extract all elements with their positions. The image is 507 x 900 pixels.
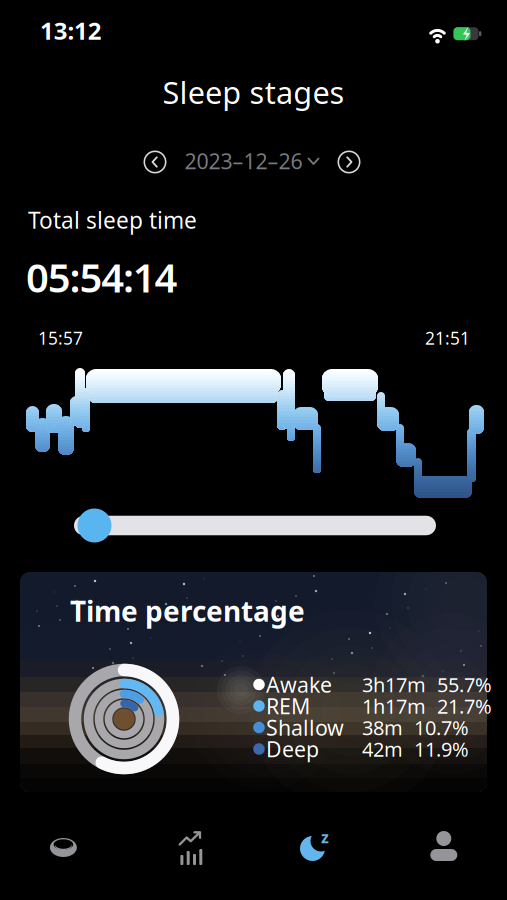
staticText: 42m [362,736,403,762]
staticText: 15:57 [38,326,83,349]
button[interactable]: Previous day [143,150,166,173]
button[interactable]: Playback position [77,508,111,542]
staticText: Time percentage [70,592,305,630]
button[interactable]: Statistics [168,824,212,870]
button[interactable]: Next day [337,150,360,173]
staticText: 1h17m [362,693,426,719]
staticText: 11.9% [414,736,469,762]
button[interactable]: Profile [422,825,466,869]
staticText: REM [266,692,310,720]
staticText: 21.7% [437,693,492,719]
staticText: 21:51 [425,326,470,349]
staticText: Total sleep time [28,205,197,235]
button[interactable]: Select date [184,147,319,175]
staticText: Sleep stages [162,72,345,112]
staticText: 13:12 [40,15,102,46]
staticText: Shallow [266,713,344,742]
button[interactable]: Sleep [295,825,339,869]
staticText: 05:54:14 [26,250,178,303]
staticText: Deep [266,735,319,763]
staticText: 55.7% [437,671,492,698]
staticText: 10.7% [414,714,469,741]
staticText: 38m [362,714,403,741]
staticText: 2023–12–26 [184,147,302,175]
staticText: 3h17m [362,671,426,698]
staticText: z [321,826,329,848]
staticText: Awake [266,670,332,699]
button[interactable]: Ring [32,823,95,871]
